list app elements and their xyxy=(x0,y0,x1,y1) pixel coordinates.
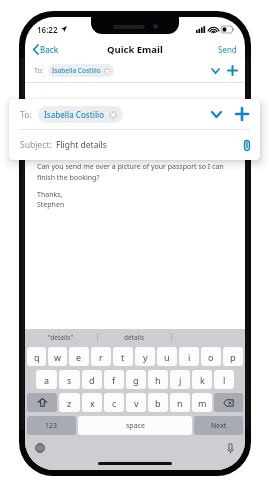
button[interactable]: j xyxy=(170,370,190,389)
staticText: e xyxy=(76,351,82,363)
staticText: k xyxy=(200,374,205,386)
staticText: Flight details xyxy=(56,139,107,151)
staticText: Hi Isabella, xyxy=(37,116,74,126)
staticText: Quick Email xyxy=(107,43,163,56)
button[interactable]: Back xyxy=(25,41,65,58)
button[interactable]: 123 xyxy=(27,416,76,435)
staticText: q xyxy=(34,351,40,363)
button[interactable]: Change keyboard language xyxy=(25,439,51,457)
staticText: Subject: xyxy=(20,139,52,151)
button[interactable]: t xyxy=(113,347,133,366)
staticText: b xyxy=(155,397,161,409)
button[interactable]: s xyxy=(59,370,80,389)
staticText: Just to confirm with you we will be flyi… xyxy=(37,134,233,154)
staticText: g xyxy=(133,374,139,386)
staticText: Next xyxy=(211,421,227,431)
staticText: "details" xyxy=(48,333,74,342)
staticText: j xyxy=(179,374,182,386)
staticText: d xyxy=(89,374,95,386)
button[interactable]: Expand recipients xyxy=(209,66,222,76)
button[interactable]: p xyxy=(223,347,243,366)
button[interactable]: Add recipient xyxy=(226,64,239,77)
button[interactable]: Isabella Costilio xyxy=(48,64,114,77)
button[interactable]: Dictate xyxy=(221,439,245,458)
button[interactable]: Attach file xyxy=(234,134,260,157)
staticText: w xyxy=(54,351,62,363)
button[interactable]: q xyxy=(27,347,46,366)
staticText: Thanks, xyxy=(37,190,63,200)
staticText: y xyxy=(143,351,148,363)
button[interactable]: i xyxy=(179,347,199,366)
staticText: x xyxy=(90,397,95,409)
other: Remove recipient xyxy=(109,111,117,119)
button[interactable]: d xyxy=(82,370,102,389)
button[interactable]: f xyxy=(104,370,124,389)
button[interactable]: space xyxy=(78,416,192,435)
button[interactable]: l xyxy=(214,370,234,389)
button[interactable]: détails xyxy=(98,329,171,345)
staticText: z xyxy=(67,397,72,409)
button[interactable]: k xyxy=(192,370,212,389)
button[interactable]: b xyxy=(148,393,168,412)
staticText: a xyxy=(44,374,50,386)
button[interactable]: n xyxy=(170,393,190,412)
staticText: détails xyxy=(124,333,145,342)
button[interactable]: w xyxy=(48,347,67,366)
staticText: r xyxy=(99,351,103,363)
staticText: m xyxy=(198,397,207,409)
button[interactable]: Isabella Costilio xyxy=(38,106,123,123)
staticText: s xyxy=(67,374,72,386)
button[interactable]: v xyxy=(126,393,146,412)
staticText: i xyxy=(188,351,191,363)
button[interactable]: c xyxy=(104,393,124,412)
staticText: Stephen xyxy=(37,200,65,210)
button[interactable]: x xyxy=(82,393,102,412)
staticText: 16:22 xyxy=(37,24,58,35)
staticText: 123 xyxy=(45,421,58,431)
button[interactable]: Next xyxy=(194,416,243,435)
button[interactable]: Backspace xyxy=(214,393,243,412)
staticText: u xyxy=(164,351,170,363)
button[interactable]: Shift xyxy=(27,393,57,412)
button[interactable]: e xyxy=(69,347,89,366)
staticText: Isabella Costilio xyxy=(44,109,105,120)
staticText: Isabella Costilio xyxy=(52,66,101,75)
button[interactable]: o xyxy=(201,347,221,366)
button[interactable]: r xyxy=(91,347,111,366)
button[interactable]: Add recipient xyxy=(232,104,252,124)
staticText: v xyxy=(134,397,139,409)
staticText: Back xyxy=(40,44,59,55)
button[interactable]: m xyxy=(192,393,212,412)
staticText: p xyxy=(230,351,236,363)
button[interactable]: Subject: xyxy=(9,130,260,160)
staticText: To: xyxy=(20,109,32,121)
staticText: c xyxy=(112,397,117,409)
staticText: n xyxy=(177,397,183,409)
button[interactable]: g xyxy=(126,370,146,389)
staticText: Can you send me over a picture of your p… xyxy=(37,162,233,182)
button[interactable]: Send xyxy=(210,41,245,58)
button[interactable]: u xyxy=(157,347,177,366)
button[interactable]: y xyxy=(135,347,155,366)
button[interactable]: h xyxy=(148,370,168,389)
button[interactable]: z xyxy=(59,393,80,412)
staticText: f xyxy=(112,374,116,386)
staticText: t xyxy=(121,351,125,363)
staticText: space xyxy=(126,421,145,431)
staticText: h xyxy=(155,374,161,386)
button[interactable]: "details" xyxy=(25,329,97,345)
other: Remove recipient xyxy=(104,68,110,74)
button[interactable]: a xyxy=(36,370,57,389)
staticText: o xyxy=(208,351,214,363)
button[interactable]: Expand recipients xyxy=(207,107,226,122)
staticText: l xyxy=(223,374,226,386)
staticText: To: xyxy=(34,66,44,76)
